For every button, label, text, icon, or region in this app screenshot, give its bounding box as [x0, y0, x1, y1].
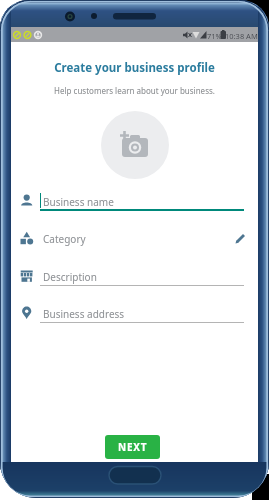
button[interactable]: Business address — [11, 301, 258, 325]
staticText: Business name — [43, 195, 114, 209]
staticText: NEXT — [118, 440, 148, 454]
button[interactable] — [101, 111, 169, 179]
staticText: Help customers learn about your business… — [11, 85, 258, 96]
staticText: Create your business profile — [11, 60, 258, 76]
button[interactable]: Description — [11, 264, 258, 288]
staticText: 71% — [207, 31, 222, 41]
staticText: Business address — [43, 307, 125, 321]
button[interactable]: Business name — [11, 189, 258, 213]
staticText: 10:38 AM — [225, 31, 258, 41]
staticText: Category — [43, 232, 86, 246]
button[interactable]: NEXT — [105, 435, 160, 459]
button[interactable]: Category — [11, 226, 258, 250]
staticText: Description — [43, 270, 97, 284]
